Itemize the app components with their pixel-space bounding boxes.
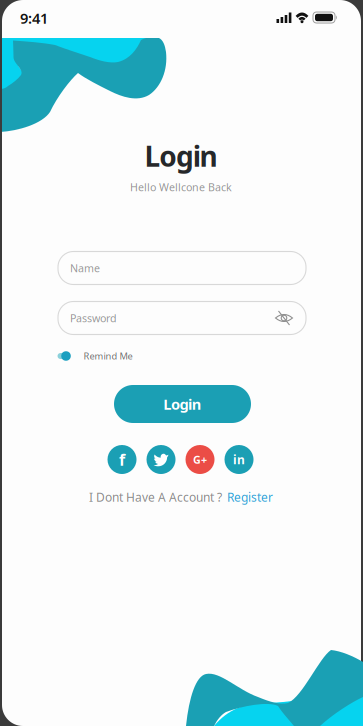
button[interactable]: Login — [114, 385, 251, 423]
button[interactable]: Name — [58, 251, 306, 284]
button[interactable]: LinkedIn — [224, 445, 253, 474]
button[interactable]: Facebook — [107, 445, 136, 474]
button[interactable]: Password — [58, 301, 306, 334]
staticText: f — [119, 449, 125, 470]
button[interactable]: Register — [227, 489, 273, 505]
staticText: I Dont Have A Account ? — [89, 489, 222, 505]
staticText: Password — [70, 311, 117, 325]
staticText: Remind Me — [83, 350, 132, 362]
button[interactable]: Remind Me — [57, 350, 132, 362]
button[interactable]: Google — [185, 445, 214, 474]
staticText: 9:41 — [20, 8, 48, 28]
staticText: Hello Wellcone Back — [130, 180, 232, 194]
staticText: Login — [144, 137, 218, 175]
staticText: in — [233, 451, 245, 467]
button[interactable]: Twitter — [146, 445, 175, 474]
staticText: Register — [227, 489, 273, 505]
staticText: Login — [163, 394, 202, 414]
staticText: G+ — [193, 452, 207, 467]
staticText: Name — [70, 261, 100, 275]
